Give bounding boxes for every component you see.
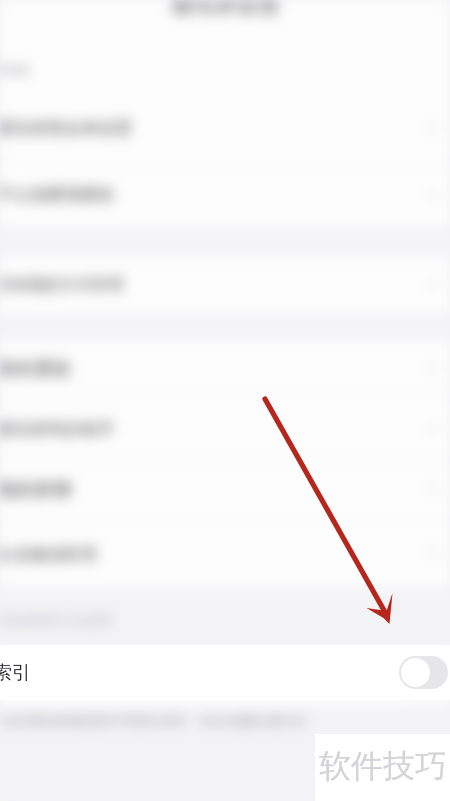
button[interactable]: 添加我的方式管理 bbox=[0, 256, 450, 314]
button[interactable]: 新的朋友 bbox=[0, 340, 450, 398]
staticText: 开启后通讯录将按照首字母进行排序 并在右侧显示索引栏 bbox=[0, 712, 307, 728]
staticText: 软件技巧 bbox=[319, 746, 447, 786]
staticText: 通讯录同步助手 bbox=[0, 419, 115, 440]
staticText: 我的群聊 bbox=[0, 478, 72, 502]
staticText: 企业微信联系 bbox=[0, 544, 98, 565]
button[interactable]: 我的群聊 bbox=[0, 460, 450, 520]
button[interactable]: 索引 bbox=[0, 645, 450, 700]
staticText: 添加我的方式管理 bbox=[0, 275, 124, 295]
button[interactable]: 通讯录黑名单设置 bbox=[0, 96, 450, 161]
staticText: 索引 bbox=[0, 667, 36, 690]
button[interactable]: 通讯录同步助手 bbox=[0, 399, 450, 459]
staticText: 新的朋友 bbox=[0, 357, 72, 381]
staticText: 索引 bbox=[0, 661, 31, 685]
button[interactable]: 企业微信联系 bbox=[0, 521, 450, 587]
staticText: 通讯录设置 bbox=[170, 0, 280, 19]
staticText: 不让他看我朋友 bbox=[0, 184, 115, 205]
button[interactable]: 不让他看我朋友 bbox=[0, 162, 450, 227]
staticText: 通讯录黑名单设置 bbox=[0, 118, 132, 139]
other: Index toggle bbox=[399, 656, 448, 689]
